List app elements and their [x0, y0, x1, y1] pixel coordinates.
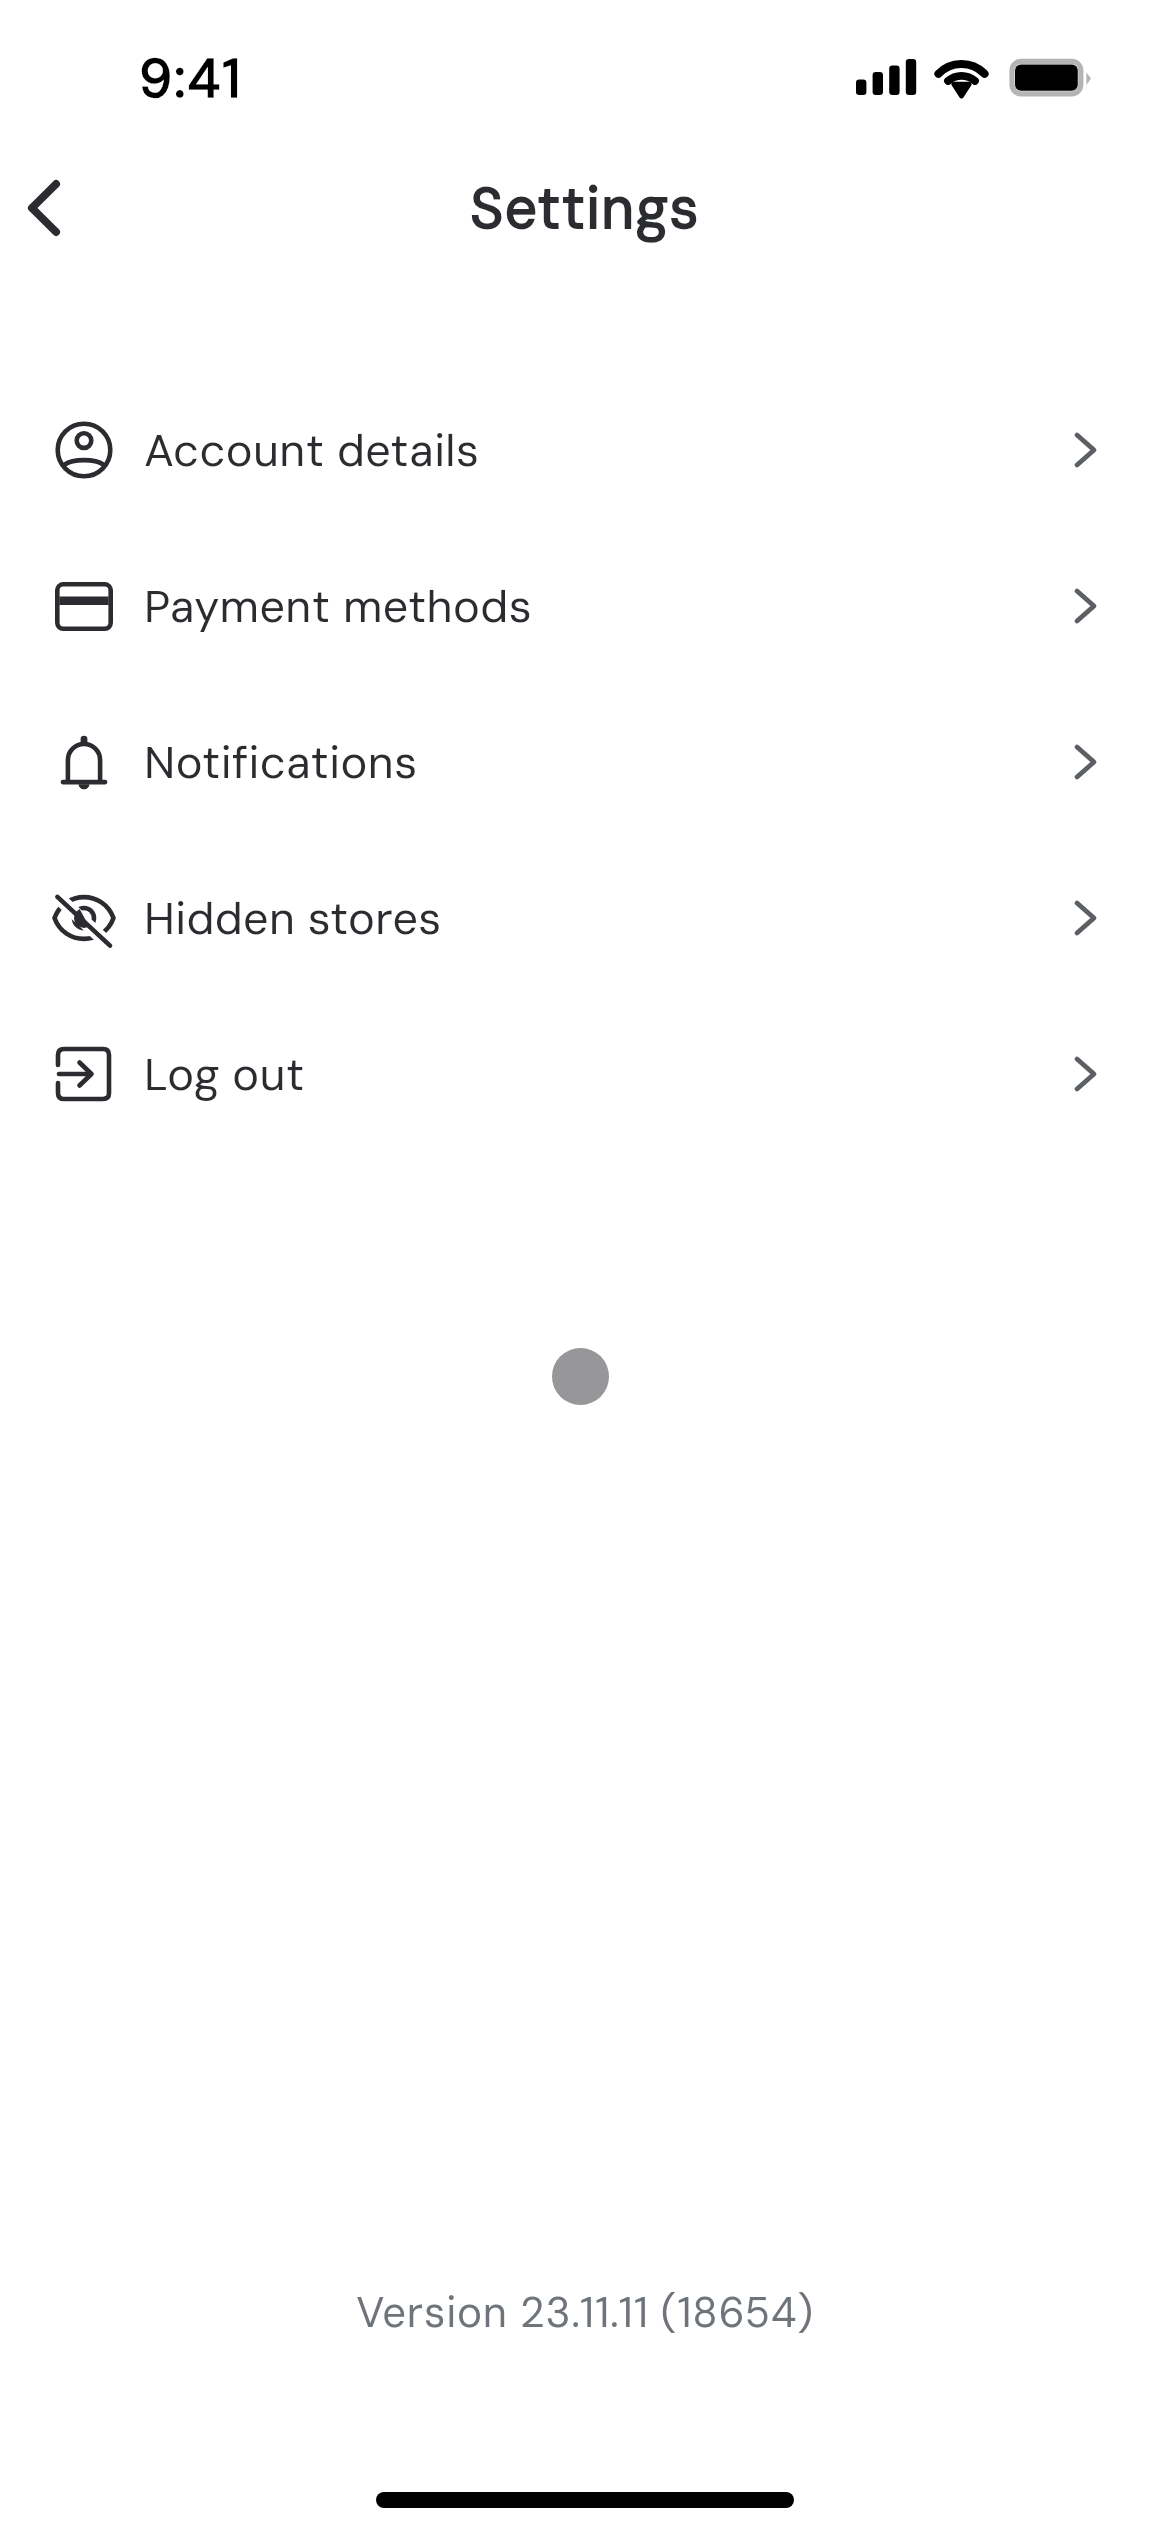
- staticText: 9:41: [139, 44, 243, 113]
- staticText: Settings: [470, 171, 700, 245]
- button[interactable]: Back: [0, 158, 94, 258]
- staticText: Payment methods: [144, 577, 532, 636]
- button[interactable]: Account details: [0, 372, 1170, 528]
- staticText: Log out: [144, 1045, 305, 1104]
- staticText: Hidden stores: [144, 889, 442, 948]
- button[interactable]: Payment methods: [0, 528, 1170, 684]
- staticText: Account details: [144, 421, 480, 480]
- button[interactable]: Hidden stores: [0, 840, 1170, 996]
- staticText: Notifications: [144, 733, 418, 792]
- button[interactable]: Log out: [0, 996, 1170, 1152]
- button[interactable]: Notifications: [0, 684, 1170, 840]
- staticText: Version 23.11.11 (18654): [356, 2285, 814, 2340]
